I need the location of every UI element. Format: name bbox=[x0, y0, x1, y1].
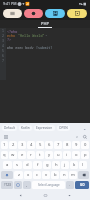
staticText: GO bbox=[80, 183, 85, 187]
staticText: g bbox=[46, 162, 49, 168]
staticText: u bbox=[57, 152, 60, 158]
button[interactable]: Record bbox=[24, 9, 43, 18]
button[interactable]: m bbox=[69, 171, 77, 179]
button[interactable]: Collapse bbox=[82, 125, 88, 131]
staticText: ?123 bbox=[4, 183, 11, 187]
button[interactable]: v bbox=[42, 171, 50, 179]
button[interactable]: g bbox=[43, 161, 51, 169]
staticText: "Hello World" bbox=[18, 33, 45, 37]
staticText: x bbox=[27, 172, 30, 178]
button[interactable]: Menu bbox=[3, 134, 8, 139]
button[interactable]: r bbox=[27, 151, 35, 159]
button[interactable]: q bbox=[1, 151, 8, 159]
button[interactable]: Search bbox=[82, 134, 87, 139]
button[interactable]: 2 bbox=[9, 141, 17, 149]
button[interactable]: d bbox=[23, 161, 32, 169]
button[interactable]: . bbox=[66, 181, 74, 189]
staticText: 2 bbox=[12, 142, 15, 148]
staticText: Default bbox=[4, 126, 15, 130]
button[interactable]: 8 bbox=[63, 141, 71, 149]
button[interactable]: Shift bbox=[1, 171, 13, 179]
button[interactable]: Home bbox=[42, 192, 49, 199]
button[interactable]: OPEN bbox=[59, 125, 68, 131]
button[interactable]: Run bbox=[67, 9, 87, 18]
button[interactable]: p bbox=[81, 151, 89, 159]
button[interactable]: k bbox=[70, 161, 78, 169]
button[interactable]: h bbox=[52, 161, 60, 169]
button[interactable]: a bbox=[3, 161, 12, 169]
button[interactable]: , bbox=[23, 181, 31, 189]
button[interactable]: o bbox=[72, 151, 80, 159]
button[interactable]: Back bbox=[17, 192, 24, 199]
button[interactable]: Default bbox=[4, 125, 15, 131]
staticText: 1 bbox=[2, 29, 4, 33]
staticText: z bbox=[18, 172, 20, 178]
button[interactable]: u bbox=[54, 151, 62, 159]
staticText: i bbox=[66, 152, 68, 158]
staticText: ; bbox=[45, 33, 48, 37]
button[interactable]: 5 bbox=[36, 141, 44, 149]
button[interactable]: b bbox=[51, 171, 59, 179]
button[interactable]: f bbox=[33, 161, 42, 169]
staticText: k bbox=[73, 162, 76, 168]
staticText: Kotlin bbox=[21, 126, 30, 130]
button[interactable]: e bbox=[18, 151, 26, 159]
button[interactable]: z bbox=[14, 171, 23, 179]
staticText: 9 bbox=[75, 142, 78, 148]
button[interactable]: 4 bbox=[27, 141, 35, 149]
button[interactable]: y bbox=[45, 151, 53, 159]
button[interactable]: w bbox=[9, 151, 17, 159]
button[interactable]: 1 bbox=[1, 141, 8, 149]
button[interactable]: ?123 bbox=[1, 181, 13, 189]
button[interactable]: PHP bbox=[38, 21, 52, 28]
button[interactable]: Recents bbox=[66, 192, 73, 199]
button[interactable]: Notifications bbox=[75, 134, 80, 139]
button[interactable]: x bbox=[24, 171, 32, 179]
staticText: 3 bbox=[2, 39, 4, 43]
staticText: v bbox=[45, 172, 48, 178]
button[interactable]: t bbox=[36, 151, 44, 159]
staticText: m bbox=[71, 172, 75, 178]
button[interactable]: Save bbox=[45, 9, 65, 18]
staticText: Expression bbox=[36, 126, 53, 130]
button[interactable]: c bbox=[33, 171, 41, 179]
button[interactable]: i bbox=[63, 151, 71, 159]
staticText: [submit] bbox=[36, 45, 53, 49]
staticText: 2 bbox=[2, 34, 4, 38]
button[interactable]: 7 bbox=[54, 141, 62, 149]
staticText: 7 bbox=[2, 59, 4, 63]
staticText: 6 bbox=[2, 54, 4, 58]
staticText: l bbox=[82, 162, 84, 168]
button[interactable]: 9 bbox=[72, 141, 80, 149]
staticText: ⌄ bbox=[83, 126, 87, 131]
staticText: f bbox=[37, 162, 39, 168]
button[interactable]: n bbox=[60, 171, 68, 179]
staticText: ▾▴ ◼ bbox=[79, 1, 87, 6]
staticText: echo bbox=[7, 33, 18, 37]
staticText: ?> bbox=[7, 37, 12, 41]
button[interactable]: j bbox=[61, 161, 69, 169]
staticText: a bbox=[6, 162, 9, 168]
button[interactable]: Space bbox=[32, 181, 65, 189]
staticText: 7 bbox=[57, 142, 60, 148]
button[interactable]: Expression bbox=[36, 125, 53, 131]
button[interactable]: Enter bbox=[75, 181, 89, 189]
staticText: j bbox=[64, 162, 66, 168]
staticText: OPEN bbox=[59, 126, 68, 130]
staticText: t bbox=[39, 152, 41, 158]
staticText: w bbox=[11, 152, 15, 158]
button[interactable]: Emoji bbox=[14, 181, 22, 189]
button[interactable]: 6 bbox=[45, 141, 53, 149]
staticText: y bbox=[48, 152, 51, 158]
button[interactable]: Kotlin bbox=[21, 125, 30, 131]
staticText: 4 bbox=[2, 44, 4, 48]
button[interactable]: l bbox=[79, 161, 87, 169]
button[interactable]: Menu bbox=[3, 9, 22, 18]
button[interactable]: 3 bbox=[18, 141, 26, 149]
button[interactable]: Backspace bbox=[78, 171, 89, 179]
staticText: 5 bbox=[39, 142, 42, 148]
button[interactable]: s bbox=[13, 161, 22, 169]
staticText: r bbox=[30, 152, 32, 158]
staticText: 5 bbox=[2, 49, 4, 53]
button[interactable]: 0 bbox=[81, 141, 89, 149]
